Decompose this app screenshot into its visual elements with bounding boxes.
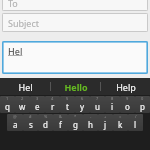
staticText: r: [51, 101, 55, 112]
button[interactable]: 2: [15, 96, 30, 113]
staticText: y: [80, 101, 85, 112]
staticText: 7: [96, 96, 99, 101]
staticText: f: [59, 119, 62, 130]
button[interactable]: 7: [90, 96, 105, 113]
button[interactable]: Hello: [51, 78, 100, 95]
staticText: 1: [6, 96, 9, 101]
button[interactable]: -: [83, 114, 98, 131]
staticText: %: [44, 114, 48, 119]
staticText: 6: [81, 96, 84, 101]
button[interactable]: /: [128, 114, 143, 131]
button[interactable]: 4: [45, 96, 60, 113]
staticText: To: [8, 0, 18, 9]
staticText: g: [73, 119, 78, 130]
staticText: q: [5, 101, 10, 112]
staticText: j: [104, 119, 107, 130]
button[interactable]: @: [7, 114, 23, 131]
staticText: #: [29, 114, 32, 119]
staticText: i: [111, 101, 114, 112]
button[interactable]: 6: [75, 96, 90, 113]
staticText: 4: [51, 96, 54, 101]
button[interactable]: 8: [105, 96, 120, 113]
staticText: a: [13, 119, 18, 130]
button[interactable]: 0: [135, 96, 150, 113]
staticText: p: [140, 101, 145, 112]
staticText: +: [104, 114, 107, 119]
button[interactable]: %: [38, 114, 53, 131]
staticText: /: [135, 114, 137, 119]
button[interactable]: 1: [0, 96, 15, 113]
staticText: o: [125, 101, 130, 112]
button[interactable]: *: [68, 114, 83, 131]
staticText: h: [88, 119, 93, 130]
staticText: 5: [66, 96, 69, 101]
staticText: e: [35, 101, 40, 112]
button[interactable]: +: [98, 114, 113, 131]
button[interactable]: Hel: [0, 78, 50, 95]
staticText: 2: [21, 96, 24, 101]
staticText: -: [90, 114, 92, 119]
staticText: s: [29, 119, 33, 130]
staticText: 8: [111, 96, 114, 101]
button[interactable]: 5: [60, 96, 75, 113]
staticText: 3: [36, 96, 39, 101]
staticText: @: [13, 114, 17, 119]
button[interactable]: Help: [101, 78, 150, 95]
button[interactable]: 9: [120, 96, 135, 113]
staticText: 0: [141, 96, 144, 101]
staticText: 9: [126, 96, 129, 101]
staticText: d: [43, 119, 48, 130]
staticText: t: [66, 101, 69, 112]
button[interactable]: Subject: [2, 13, 148, 32]
button[interactable]: Hel: [2, 41, 148, 74]
staticText: Hello: [64, 81, 88, 93]
staticText: w: [19, 101, 26, 112]
staticText: Subject: [8, 17, 40, 29]
button[interactable]: &: [53, 114, 68, 131]
staticText: &: [59, 114, 62, 119]
button[interactable]: #: [23, 114, 38, 131]
staticText: Hel: [18, 81, 33, 93]
staticText: =: [119, 114, 122, 119]
staticText: k: [118, 119, 123, 130]
button[interactable]: 3: [30, 96, 45, 113]
staticText: l: [134, 119, 137, 130]
staticText: Help: [116, 81, 136, 93]
staticText: Hel: [8, 45, 23, 57]
staticText: u: [95, 101, 100, 112]
staticText: *: [74, 114, 77, 119]
button[interactable]: To: [2, 0, 148, 11]
button[interactable]: =: [113, 114, 128, 131]
